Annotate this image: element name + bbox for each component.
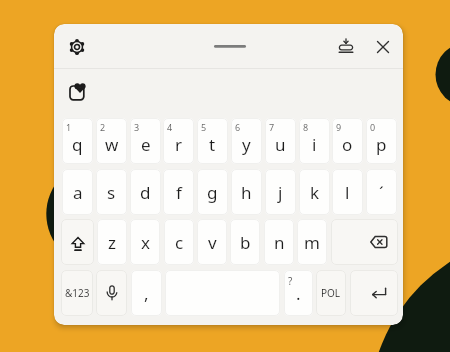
button[interactable] [67,80,93,106]
button[interactable]: g [197,169,228,215]
button[interactable]: c [164,219,194,265]
button[interactable]: d [130,169,161,215]
button[interactable]: n [264,219,294,265]
staticText: b [240,231,251,254]
staticText: q [72,133,83,156]
button[interactable] [62,32,92,62]
button[interactable]: p [366,118,397,164]
button[interactable]: s [96,169,127,215]
button[interactable]: r [163,118,194,164]
button[interactable]: . [284,270,313,316]
button[interactable]: h [231,169,262,215]
staticText: ´ [379,181,384,204]
button[interactable]: t [197,118,228,164]
staticText: f [176,181,182,204]
button[interactable]: u [265,118,296,164]
button[interactable] [96,270,127,316]
button[interactable]: v [197,219,227,265]
button[interactable] [368,32,397,61]
staticText: k [310,181,320,204]
button[interactable] [331,219,398,265]
button[interactable] [350,270,398,316]
button[interactable]: ´ [366,169,397,215]
staticText: 1 [66,121,72,133]
button[interactable] [61,219,94,265]
button[interactable]: z [97,219,127,265]
button[interactable]: k [299,169,330,215]
button[interactable]: y [231,118,262,164]
button[interactable]: l [332,169,363,215]
staticText: 7 [269,121,275,133]
staticText: m [304,231,320,254]
staticText: j [278,181,283,204]
staticText: c [175,231,184,254]
button[interactable]: e [130,118,161,164]
staticText: z [108,231,116,254]
button[interactable]: x [130,219,160,265]
staticText: 6 [235,121,241,133]
button[interactable]: a [62,169,93,215]
button[interactable] [165,270,280,316]
button[interactable]: f [163,169,194,215]
staticText: 0 [370,121,376,133]
button[interactable]: &123 [61,270,93,316]
staticText: i [312,133,317,156]
staticText: r [175,133,183,156]
button[interactable]: , [131,270,162,316]
staticText: l [345,181,350,204]
staticText: t [209,133,216,156]
button[interactable]: i [299,118,330,164]
staticText: POL [321,286,341,300]
staticText: s [107,181,116,204]
staticText: &123 [65,286,90,300]
staticText: 2 [100,121,106,133]
button[interactable] [331,32,360,61]
staticText: g [207,181,218,204]
staticText: 8 [303,121,309,133]
button[interactable]: w [96,118,127,164]
button[interactable]: b [230,219,260,265]
staticText: y [242,133,251,156]
staticText: x [141,231,150,254]
staticText: . [296,282,301,305]
staticText: n [274,231,285,254]
staticText: a [73,181,83,204]
button[interactable]: o [332,118,363,164]
staticText: p [376,133,387,156]
button[interactable]: j [265,169,296,215]
staticText: h [241,181,252,204]
staticText: ? [288,274,293,288]
staticText: o [342,133,353,156]
staticText: e [141,133,151,156]
staticText: d [140,181,151,204]
staticText: 9 [336,121,342,133]
button[interactable]: q [62,118,93,164]
staticText: , [144,282,149,305]
staticText: w [105,133,119,156]
staticText: 4 [167,121,173,133]
button[interactable]: POL [316,270,346,316]
staticText: v [208,231,217,254]
staticText: u [275,133,286,156]
staticText: 5 [201,121,207,133]
button[interactable]: m [297,219,327,265]
staticText: 3 [134,121,140,133]
